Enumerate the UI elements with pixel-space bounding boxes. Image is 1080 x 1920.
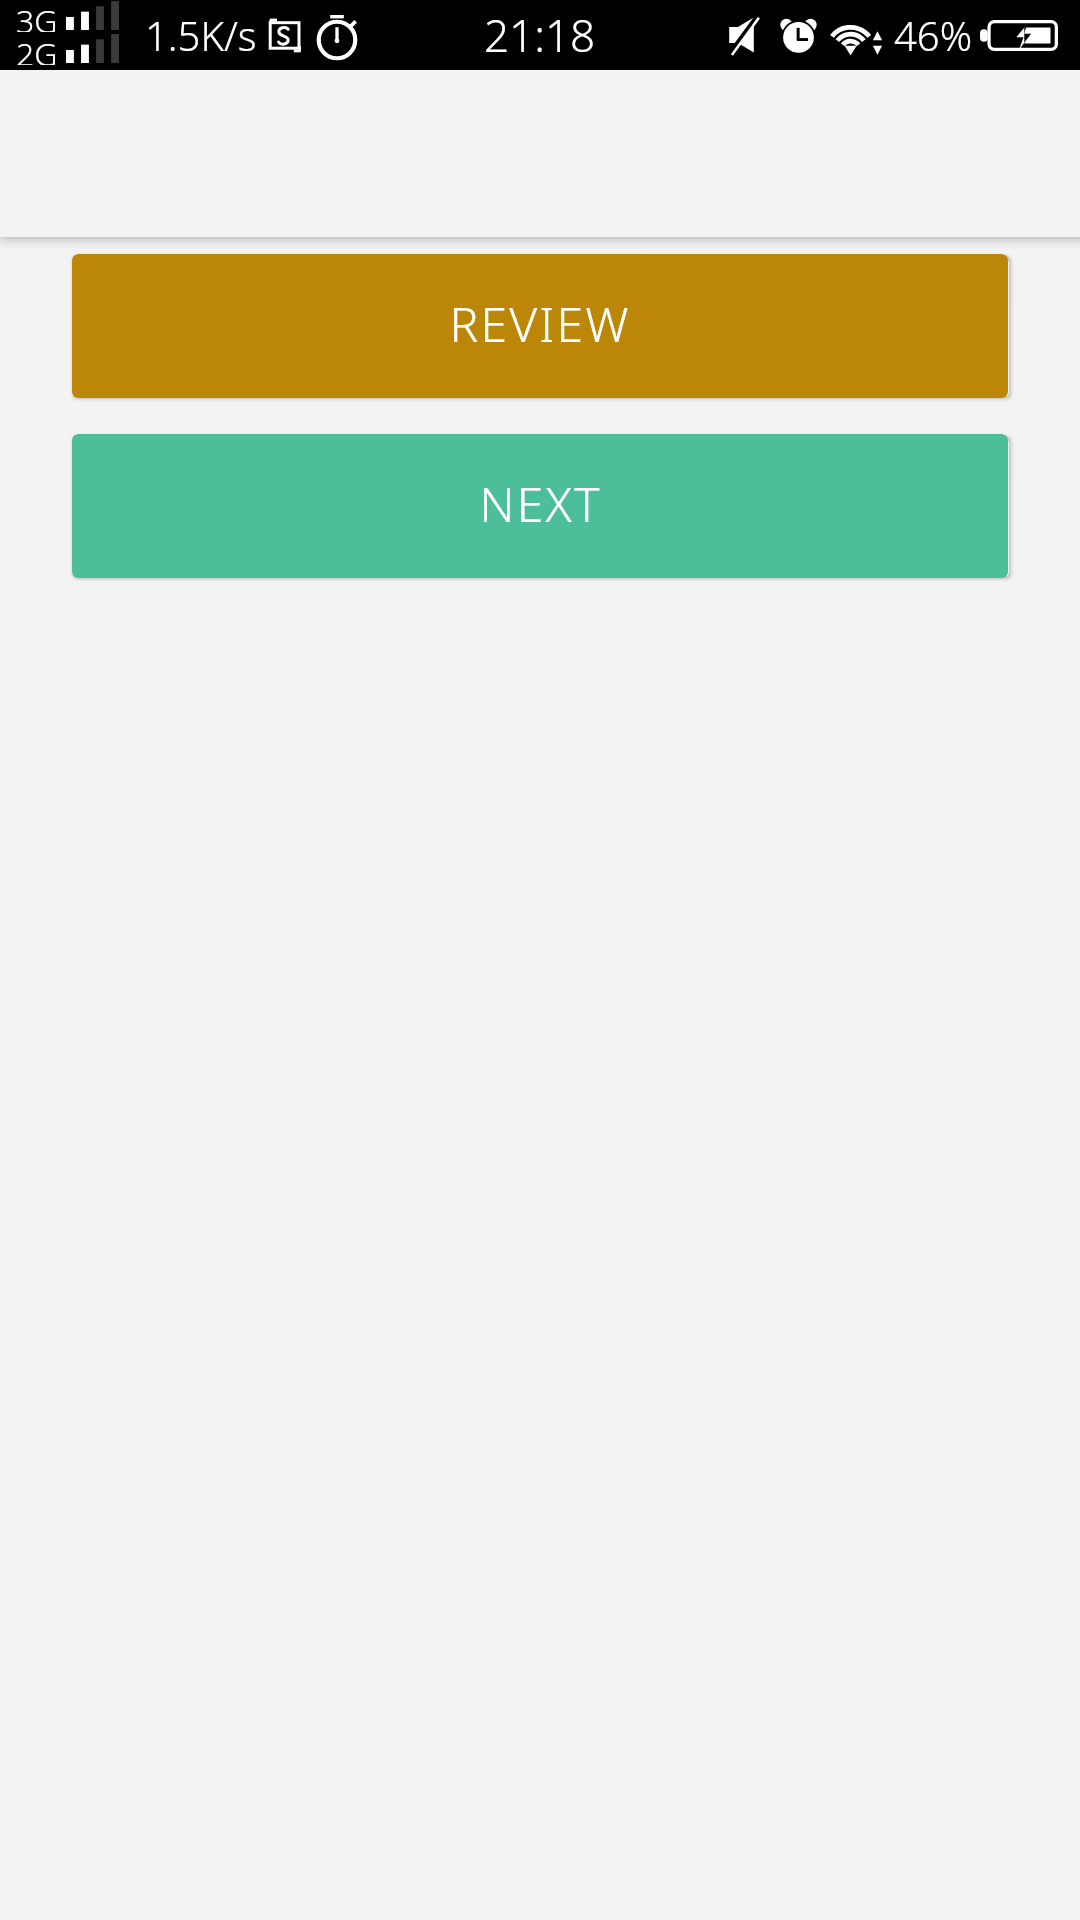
other: Alarm set [781, 18, 816, 52]
staticText: 3G [16, 0, 58, 32]
button[interactable]: REVIEW [72, 254, 1008, 398]
other: Battery charging 46 percent [980, 20, 1058, 51]
button[interactable]: NEXT [72, 434, 1008, 578]
staticText: REVIEW [449, 291, 631, 356]
other: Timer [315, 15, 359, 55]
staticText: 46% [894, 8, 973, 62]
other: Wi-Fi [825, 16, 889, 54]
staticText: 2G [16, 32, 58, 65]
other: Silent mode [728, 15, 758, 55]
staticText: NEXT [479, 471, 602, 536]
staticText: 1.5K/s [145, 8, 257, 62]
staticText: 21:18 [484, 5, 596, 65]
